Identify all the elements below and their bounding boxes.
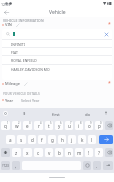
staticText: 7: [70, 121, 72, 125]
button[interactable]: u: [65, 121, 73, 130]
staticText: v: [48, 150, 51, 156]
staticText: ?123: [2, 164, 9, 168]
button[interactable]: Edit: [15, 22, 21, 28]
button[interactable]: .: [93, 161, 101, 170]
button[interactable]: Edit: [23, 81, 29, 87]
staticText: $: [23, 111, 26, 117]
button[interactable]: Backspace: [105, 121, 113, 130]
button[interactable]: t: [45, 121, 53, 130]
staticText: YOUR VEHICLE DETAILS: [3, 92, 40, 96]
button[interactable]: i: [75, 121, 83, 130]
staticText: 4: [40, 121, 42, 125]
button[interactable]: g: [48, 135, 56, 144]
staticText: i: [78, 123, 80, 129]
button[interactable]: ROYAL ENFIELD: [11, 56, 112, 64]
button[interactable]: Emoji: [83, 161, 91, 170]
button[interactable]: d: [28, 135, 36, 144]
button[interactable]: INFINITI: [11, 40, 112, 48]
button[interactable]: f: [38, 135, 46, 144]
staticText: INFINITI: [11, 42, 26, 47]
button[interactable]: Clear: [6, 29, 109, 39]
button[interactable]: c: [34, 148, 43, 157]
staticText: p: [98, 123, 101, 129]
staticText: ROYAL ENFIELD: [11, 58, 37, 63]
button[interactable]: a: [6, 135, 15, 144]
staticText: 6: [60, 121, 62, 125]
staticText: f: [41, 137, 43, 143]
staticText: l: [91, 137, 93, 143]
staticText: 5: [50, 121, 52, 125]
staticText: h: [61, 137, 64, 143]
staticText: Select Year: [21, 98, 40, 103]
staticText: k: [81, 137, 84, 143]
button[interactable]: Backspace: [105, 148, 113, 157]
button[interactable]: e: [23, 121, 32, 130]
staticText: c: [37, 150, 40, 156]
button[interactable]: y: [55, 121, 63, 130]
staticText: j: [71, 137, 73, 143]
staticText: ?: [98, 150, 100, 156]
staticText: 9: [90, 121, 92, 125]
staticText: b: [58, 150, 61, 156]
staticText: w: [15, 123, 19, 129]
staticText: 1: [7, 121, 9, 125]
button[interactable]: h: [58, 135, 66, 144]
button[interactable]: ?: [95, 148, 103, 157]
staticText: m: [77, 150, 82, 156]
staticText: 12:05: [1, 2, 11, 7]
button[interactable]: Back: [1, 7, 11, 17]
staticText: r: [38, 123, 40, 129]
button[interactable]: Mileage: [2, 80, 111, 87]
button[interactable]: r: [34, 121, 43, 130]
staticText: t: [48, 123, 50, 129]
button[interactable]: More: [103, 161, 113, 170]
button[interactable]: p: [95, 121, 103, 130]
button[interactable]: Clear: [103, 31, 109, 37]
staticText: first: [52, 112, 60, 118]
staticText: s: [20, 137, 23, 143]
button[interactable]: Google: [2, 110, 9, 117]
button[interactable]: s: [17, 135, 26, 144]
button[interactable]: n: [65, 148, 73, 157]
button[interactable]: l: [88, 135, 96, 144]
button[interactable]: VIN: [2, 21, 111, 28]
button[interactable]: Year: [2, 96, 112, 104]
button[interactable]: v: [45, 148, 53, 157]
staticText: ,: [15, 163, 17, 169]
staticText: 3: [29, 121, 31, 125]
staticText: FIAT: [11, 50, 19, 55]
button[interactable]: b: [55, 148, 63, 157]
button[interactable]: q: [1, 121, 10, 130]
staticText: 2: [18, 121, 20, 125]
staticText: z: [15, 150, 18, 156]
staticText: *: [108, 80, 111, 87]
button[interactable]: k: [78, 135, 86, 144]
button[interactable]: !: [85, 148, 93, 157]
button[interactable]: Voice input: [103, 110, 109, 116]
staticText: g: [51, 137, 54, 143]
button[interactable]: o: [85, 121, 93, 130]
staticText: Year: [5, 98, 14, 103]
staticText: VIN: [5, 22, 12, 27]
button[interactable]: j: [68, 135, 76, 144]
staticText: y: [58, 123, 61, 129]
button[interactable]: x: [23, 148, 32, 157]
button[interactable]: m: [75, 148, 83, 157]
staticText: u: [68, 123, 71, 129]
button[interactable]: FIAT: [11, 48, 112, 56]
staticText: do: [85, 112, 91, 118]
button[interactable]: Next: [99, 135, 113, 144]
staticText: VEHICLE INFORMATION: [3, 18, 44, 23]
staticText: 0: [100, 121, 102, 125]
staticText: Vehicle: [49, 9, 66, 16]
staticText: Mileage: [5, 81, 20, 86]
button[interactable]: HARLEY-DAVIDSON MO: [11, 65, 112, 73]
button[interactable]: w: [12, 121, 21, 130]
button[interactable]: ,: [12, 161, 20, 170]
staticText: x: [26, 150, 29, 156]
button[interactable]: Shift: [1, 148, 10, 157]
button[interactable]: ?123: [1, 161, 10, 170]
staticText: 8: [80, 121, 82, 125]
button[interactable]: z: [12, 148, 21, 157]
